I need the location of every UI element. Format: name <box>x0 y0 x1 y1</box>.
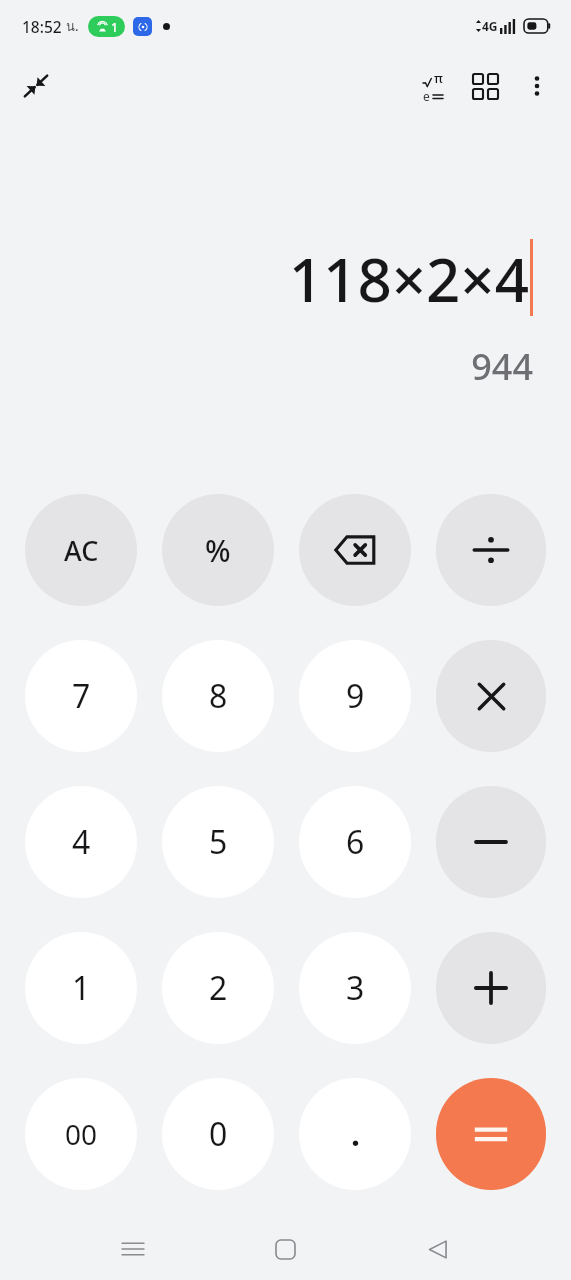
staticText: 3 <box>346 966 365 1010</box>
staticText: 00 <box>65 1115 98 1153</box>
staticText: 4G <box>482 18 498 34</box>
staticText: 6 <box>346 820 365 864</box>
button[interactable]: 8 <box>162 640 274 752</box>
staticText: e <box>423 88 430 104</box>
staticText: 1 <box>72 966 91 1010</box>
button[interactable]: 7 <box>25 640 137 752</box>
button[interactable]: Recent apps <box>105 1221 161 1277</box>
button[interactable]: Scientific mode <box>407 60 459 112</box>
staticText: 7 <box>72 674 91 718</box>
staticText: 18:52 <box>22 16 62 37</box>
button[interactable]: 6 <box>299 786 411 898</box>
button[interactable]: 00 <box>25 1078 137 1190</box>
button[interactable]: 0 <box>162 1078 274 1190</box>
staticText: . <box>351 1112 360 1156</box>
button[interactable]: 1 <box>25 932 137 1044</box>
button[interactable]: Home <box>257 1221 313 1277</box>
staticText: 5 <box>209 820 228 864</box>
button[interactable]: Back <box>409 1221 465 1277</box>
button[interactable]: . <box>299 1078 411 1190</box>
staticText: น. <box>66 16 79 37</box>
button[interactable]: Plus <box>436 932 546 1044</box>
button[interactable]: More options <box>511 60 563 112</box>
button[interactable]: 9 <box>299 640 411 752</box>
button[interactable]: Collapse <box>10 60 62 112</box>
staticText: 4 <box>72 820 91 864</box>
button[interactable]: Unit converter <box>459 60 511 112</box>
button[interactable]: Equals <box>436 1078 546 1190</box>
staticText: 944 <box>471 342 533 391</box>
staticText: 9 <box>346 674 365 718</box>
button[interactable]: Minus <box>436 786 546 898</box>
staticText: 1 <box>111 19 118 35</box>
staticText: π <box>434 69 443 87</box>
button[interactable]: Backspace <box>299 494 411 606</box>
staticText: 118×2×4 <box>288 238 529 320</box>
button[interactable]: 5 <box>162 786 274 898</box>
staticText: % <box>205 530 231 571</box>
staticText: 0 <box>209 1112 228 1156</box>
button[interactable]: AC <box>25 494 137 606</box>
button[interactable]: 4 <box>25 786 137 898</box>
button[interactable]: 3 <box>299 932 411 1044</box>
button[interactable]: 2 <box>162 932 274 1044</box>
staticText: 8 <box>209 674 228 718</box>
button[interactable]: Multiply <box>436 640 546 752</box>
staticText: 2 <box>209 966 228 1010</box>
button[interactable]: Divide <box>436 494 546 606</box>
staticText: AC <box>64 532 99 569</box>
button[interactable]: % <box>162 494 274 606</box>
